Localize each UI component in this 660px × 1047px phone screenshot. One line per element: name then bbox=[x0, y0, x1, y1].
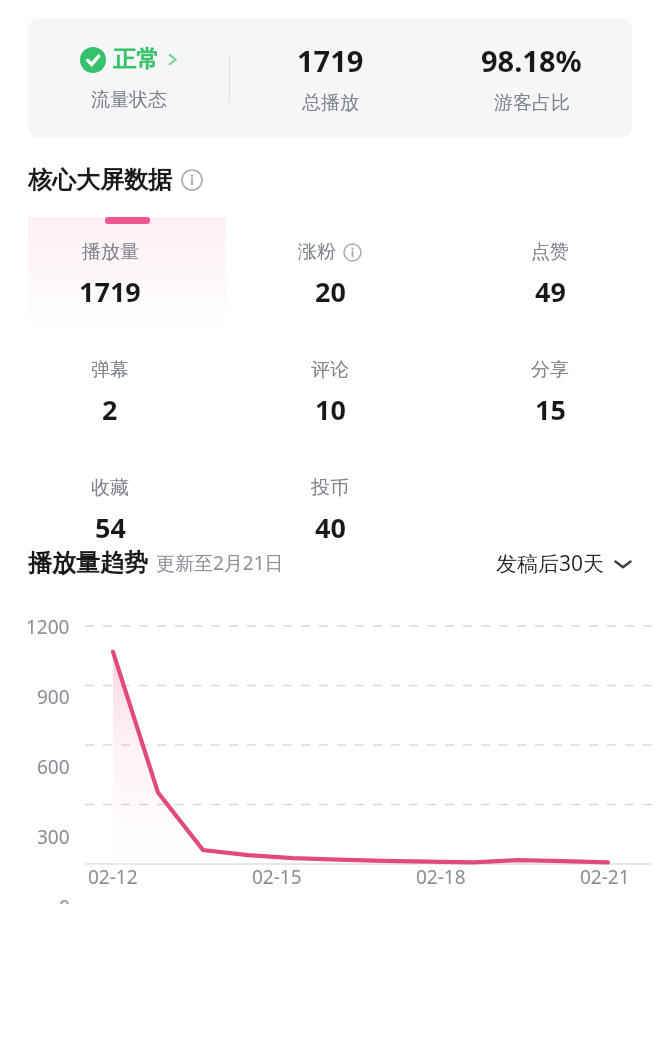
button[interactable]: 收藏 bbox=[0, 476, 220, 546]
button[interactable]: 涨粉 bbox=[220, 240, 440, 310]
staticText: 600 bbox=[37, 754, 70, 780]
button[interactable]: 发稿后30天 bbox=[496, 549, 632, 578]
staticText: 播放量 bbox=[82, 240, 139, 264]
button[interactable]: 正常 bbox=[28, 18, 632, 138]
staticText: 02-21 bbox=[580, 864, 630, 890]
button[interactable]: 弹幕 bbox=[0, 358, 220, 428]
staticText: 游客占比 bbox=[494, 91, 570, 115]
staticText: 1200 bbox=[26, 614, 70, 640]
staticText: 总播放 bbox=[302, 91, 359, 115]
button[interactable]: 98.18% bbox=[431, 18, 632, 138]
button[interactable]: 投币 bbox=[220, 476, 440, 546]
button[interactable]: 1719 bbox=[230, 18, 431, 138]
staticText: 02-12 bbox=[88, 864, 138, 890]
staticText: 0 bbox=[59, 894, 70, 904]
button[interactable]: 评论 bbox=[220, 358, 440, 428]
staticText: 正常 bbox=[113, 45, 159, 74]
staticText: 点赞 bbox=[531, 240, 569, 264]
button[interactable]: 说明 bbox=[181, 169, 203, 191]
staticText: 02-18 bbox=[416, 864, 466, 890]
staticText: 播放量趋势 bbox=[28, 548, 148, 578]
staticText: 02-15 bbox=[252, 864, 302, 890]
staticText: 涨粉 bbox=[298, 240, 336, 264]
staticText: 900 bbox=[37, 684, 70, 710]
staticText: 10 bbox=[315, 391, 346, 428]
staticText: 54 bbox=[95, 509, 126, 546]
staticText: 1719 bbox=[297, 41, 364, 80]
button[interactable]: 分享 bbox=[440, 358, 660, 428]
staticText: 发稿后30天 bbox=[496, 549, 605, 578]
staticText: 98.18% bbox=[481, 41, 582, 80]
staticText: 300 bbox=[37, 824, 70, 850]
staticText: 1719 bbox=[79, 273, 141, 310]
staticText: 20 bbox=[315, 273, 346, 310]
staticText: 15 bbox=[535, 391, 566, 428]
staticText: 投币 bbox=[311, 476, 349, 500]
staticText: 弹幕 bbox=[91, 358, 129, 382]
staticText: 2 bbox=[102, 391, 118, 428]
button[interactable]: 点赞 bbox=[440, 240, 660, 310]
staticText: 评论 bbox=[311, 358, 349, 382]
button[interactable]: 播放量 bbox=[0, 240, 220, 310]
staticText: 核心大屏数据 bbox=[28, 165, 172, 195]
staticText: 分享 bbox=[531, 358, 569, 382]
staticText: 40 bbox=[315, 509, 346, 546]
staticText: 流量状态 bbox=[91, 88, 167, 112]
staticText: 49 bbox=[535, 273, 566, 310]
staticText: 收藏 bbox=[91, 476, 129, 500]
staticText: 更新至2月21日 bbox=[156, 550, 284, 576]
